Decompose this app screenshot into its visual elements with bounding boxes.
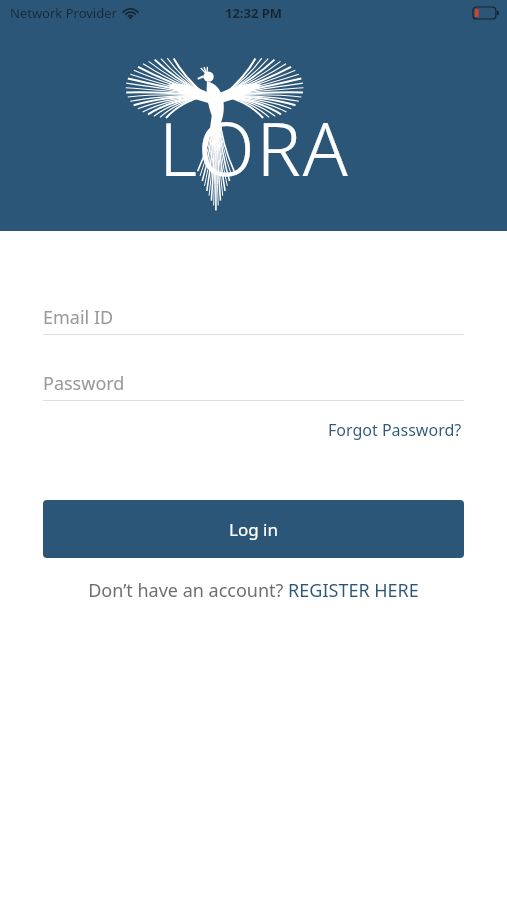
button[interactable]: Email ID xyxy=(43,300,464,335)
button[interactable]: Forgot Password? xyxy=(326,414,464,446)
button[interactable]: Password xyxy=(43,366,464,401)
staticText: LORA xyxy=(159,97,350,198)
staticText: Email ID xyxy=(43,305,114,330)
button[interactable]: Don’t have an account? REGISTER HERE xyxy=(84,572,423,609)
staticText: Don’t have an account? REGISTER HERE xyxy=(88,578,419,603)
staticText: Log in xyxy=(229,518,278,541)
button[interactable]: Log in xyxy=(43,500,464,558)
staticText: 12:32 PM xyxy=(225,4,283,22)
staticText: Password xyxy=(43,371,125,396)
staticText: Forgot Password? xyxy=(328,419,462,441)
staticText: Network Provider xyxy=(10,4,117,22)
